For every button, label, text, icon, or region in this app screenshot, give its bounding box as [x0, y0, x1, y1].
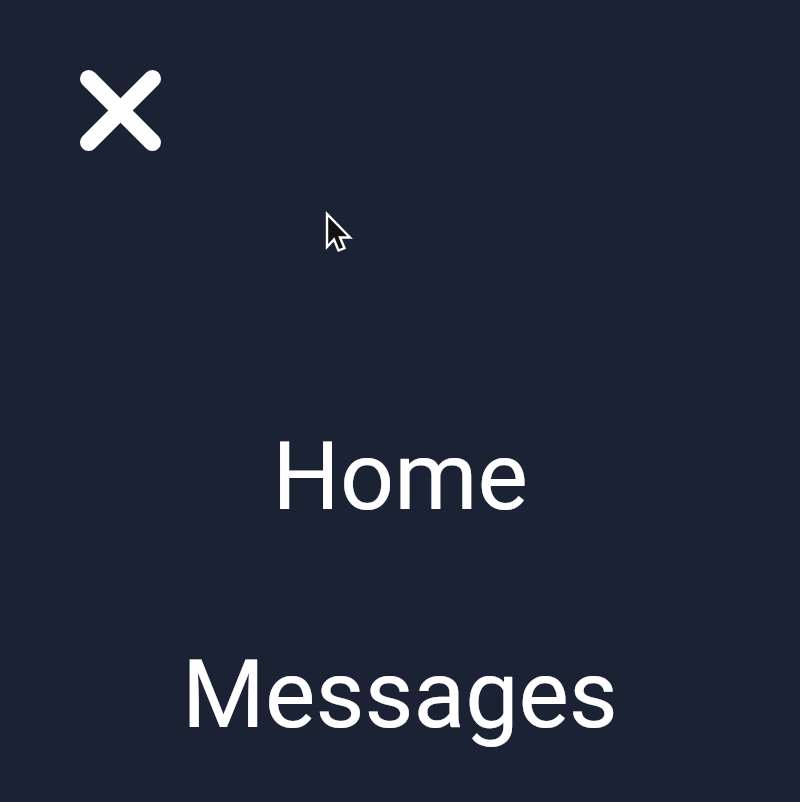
button[interactable]: Home: [0, 366, 800, 586]
staticText: Messages: [182, 639, 618, 750]
staticText: Home: [272, 421, 528, 532]
button[interactable]: Close menu: [56, 46, 184, 174]
button[interactable]: Messages: [0, 586, 800, 802]
